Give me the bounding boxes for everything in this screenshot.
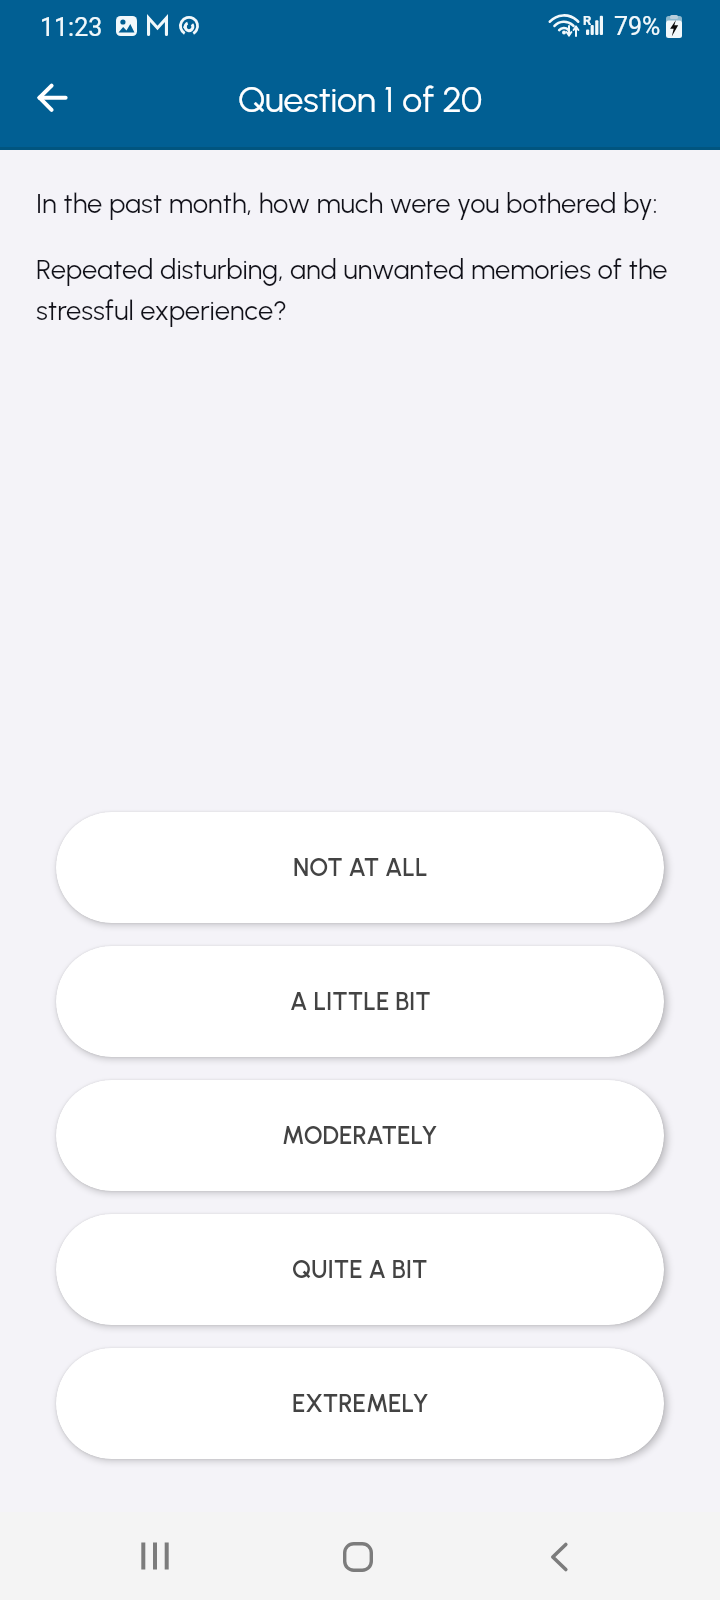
button[interactable]: QUITE A BIT — [56, 1214, 664, 1325]
button[interactable]: EXTREMELY — [56, 1348, 664, 1459]
staticText: QUITE A BIT — [292, 1255, 428, 1285]
button[interactable]: Recents — [119, 1520, 191, 1592]
button[interactable]: MODERATELY — [56, 1080, 664, 1191]
staticText: MODERATELY — [282, 1121, 438, 1151]
staticText: 11:23 — [40, 13, 103, 42]
staticText: In the past month, how much were you bot… — [36, 187, 658, 220]
staticText: Repeated disturbing, and unwanted memori… — [36, 253, 696, 327]
button[interactable]: NOT AT ALL — [56, 812, 664, 923]
staticText: Question 1 of 20 — [0, 78, 720, 121]
staticText: EXTREMELY — [292, 1389, 429, 1419]
staticText: 79% — [614, 12, 661, 41]
staticText: NOT AT ALL — [293, 853, 428, 883]
button[interactable]: A LITTLE BIT — [56, 946, 664, 1057]
button[interactable]: Back — [523, 1521, 595, 1593]
staticText: R — [583, 13, 592, 28]
button[interactable]: Back — [26, 74, 74, 122]
button[interactable]: Home — [322, 1521, 394, 1593]
staticText: A LITTLE BIT — [290, 987, 431, 1017]
